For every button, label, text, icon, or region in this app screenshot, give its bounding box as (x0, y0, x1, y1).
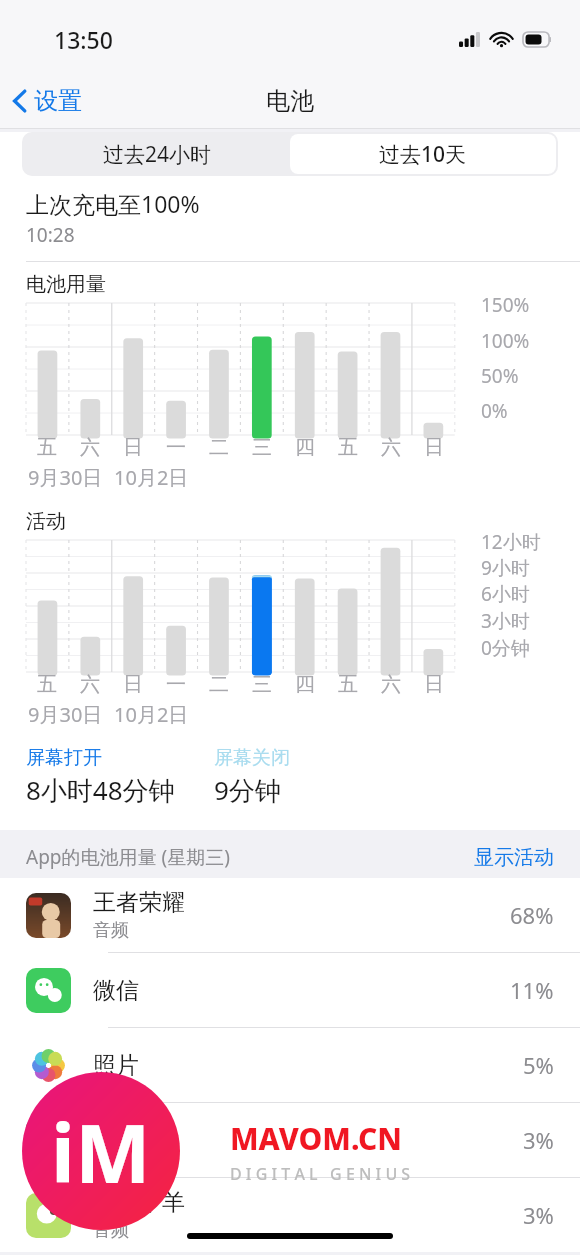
staticText: 10月2日 (114, 464, 189, 491)
staticText: 日 (123, 435, 143, 460)
staticText: 上次充电至100% (26, 188, 200, 219)
staticText: 日 (424, 435, 444, 460)
button[interactable]: 过去24小时 (24, 134, 290, 174)
staticText: 10:28 (26, 222, 75, 248)
staticText: 日 (123, 672, 143, 697)
staticText: 150% (481, 292, 530, 318)
staticText: iM (51, 1097, 151, 1206)
staticText: 9月30日 (28, 464, 103, 491)
staticText: 12小时 (481, 529, 541, 555)
staticText: 微信 (93, 976, 139, 1005)
staticText: D I G I T A L G E N I U S (230, 1163, 411, 1185)
staticText: 音频 (93, 919, 129, 942)
button[interactable]: 抖音 (0, 1103, 580, 1178)
staticText: 二 (209, 672, 229, 697)
staticText: 6小时 (481, 581, 530, 607)
button[interactable]: 羊了个羊 (0, 1178, 580, 1252)
staticText: 9分钟 (214, 772, 281, 808)
staticText: 二 (209, 435, 229, 460)
staticText: 六 (381, 435, 401, 460)
staticText: 100% (481, 328, 530, 354)
staticText: 电池用量 (26, 272, 106, 297)
staticText: 过去24小时 (103, 140, 212, 169)
staticText: 13:50 (54, 24, 113, 55)
staticText: 3小时 (481, 608, 530, 634)
staticText: App的电池用量 (星期三) (26, 844, 230, 870)
staticText: 一 (166, 435, 186, 460)
staticText: 8小时48分钟 (26, 772, 175, 808)
staticText: 68% (510, 900, 554, 930)
staticText: 羊了个羊 (93, 1188, 185, 1217)
staticText: 六 (80, 435, 100, 460)
staticText: 0分钟 (481, 635, 530, 661)
staticText: 四 (295, 435, 315, 460)
staticText: 抖音 (93, 1126, 139, 1155)
staticText: 五 (37, 435, 57, 460)
staticText: 音频 (93, 1219, 129, 1242)
staticText: 50% (481, 363, 519, 389)
staticText: 三 (252, 672, 272, 697)
staticText: 11% (510, 975, 554, 1005)
staticText: 5% (523, 1050, 554, 1080)
staticText: 六 (381, 672, 401, 697)
button[interactable]: 设置 (0, 80, 92, 122)
staticText: 王者荣耀 (93, 888, 185, 917)
staticText: 五 (37, 672, 57, 697)
staticText: 屏幕关闭 (214, 746, 290, 770)
staticText: 9小时 (481, 555, 530, 581)
staticText: 3% (523, 1125, 554, 1155)
staticText: 0% (481, 398, 508, 424)
staticText: 活动 (26, 509, 66, 534)
staticText: 三 (252, 435, 272, 460)
staticText: 10月2日 (114, 701, 189, 728)
staticText: 3% (523, 1200, 554, 1230)
staticText: 显示活动 (474, 845, 554, 870)
button[interactable]: 微信 (0, 953, 580, 1028)
staticText: 四 (295, 672, 315, 697)
button[interactable]: 过去10天 (290, 134, 556, 174)
button[interactable]: 王者荣耀 (0, 878, 580, 953)
staticText: 日 (424, 672, 444, 697)
staticText: 9月30日 (28, 701, 103, 728)
staticText: 五 (338, 435, 358, 460)
staticText: 设置 (34, 86, 82, 116)
staticText: 一 (166, 672, 186, 697)
button[interactable]: 显示活动 (474, 845, 554, 870)
staticText: 电池 (266, 86, 314, 116)
staticText: 五 (338, 672, 358, 697)
staticText: 六 (80, 672, 100, 697)
staticText: 屏幕打开 (26, 746, 102, 770)
staticText: 过去10天 (379, 140, 467, 169)
button[interactable]: 照片 (0, 1028, 580, 1103)
staticText: MAVOM.CN (230, 1118, 402, 1159)
staticText: 照片 (93, 1051, 139, 1080)
